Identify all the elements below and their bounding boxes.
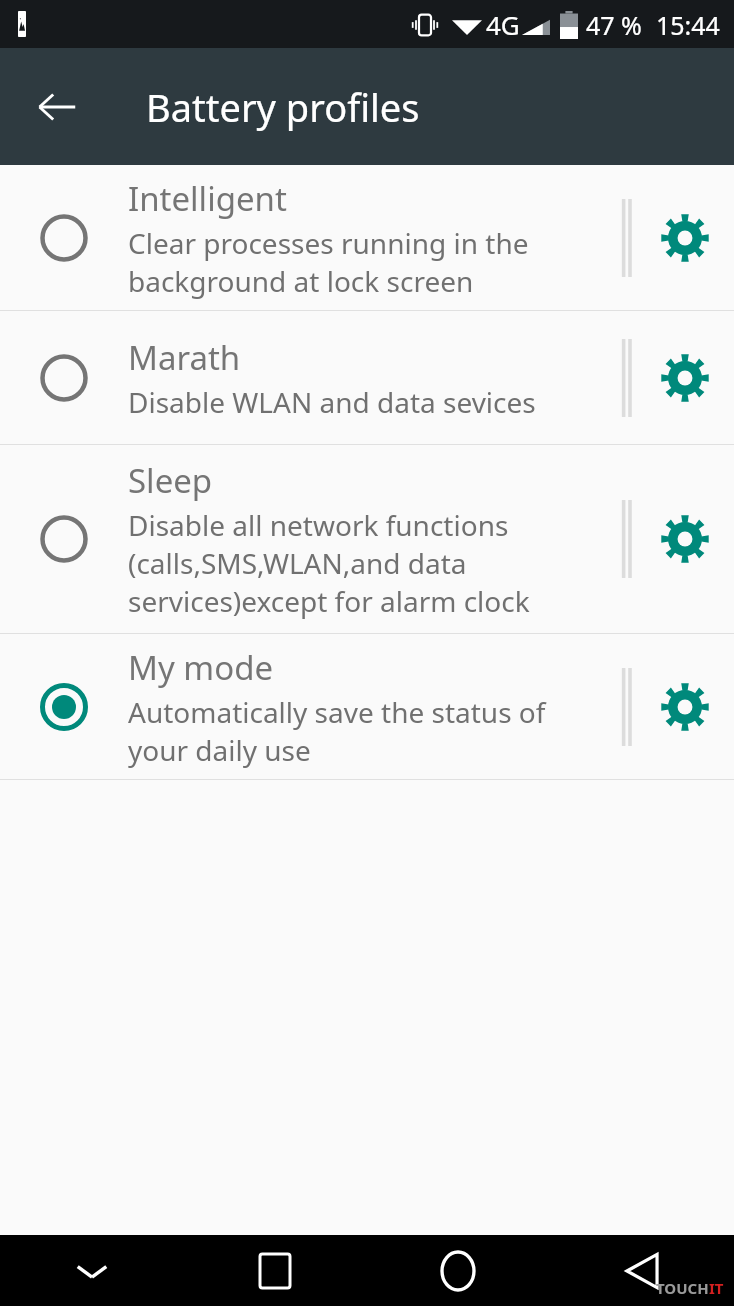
- staticText: 4G: [486, 7, 520, 42]
- staticText: Automatically save the status of: [128, 693, 546, 731]
- staticText: services)except for alarm clock: [128, 582, 530, 620]
- staticText: Marath: [128, 335, 241, 380]
- button[interactable]: Not selected: [0, 311, 734, 444]
- button[interactable]: Not selected: [28, 342, 100, 414]
- button[interactable]: Not selected: [0, 445, 734, 633]
- staticText: Disable all network functions: [128, 506, 509, 544]
- staticText: (calls,SMS,WLAN,and data: [128, 544, 467, 582]
- button[interactable]: Settings for My mode: [649, 671, 721, 743]
- button[interactable]: Not selected: [28, 503, 100, 575]
- staticText: Clear processes running in the: [128, 224, 529, 262]
- staticText: Intelligent: [128, 176, 287, 221]
- button[interactable]: Back: [550, 1235, 734, 1306]
- staticText: 15:44: [656, 8, 720, 42]
- button[interactable]: Recent apps: [183, 1235, 366, 1306]
- button[interactable]: Not selected: [0, 165, 734, 310]
- button[interactable]: Settings for Intelligent: [649, 202, 721, 274]
- button[interactable]: Hide keyboard: [0, 1235, 183, 1306]
- button[interactable]: Settings for Marath: [649, 342, 721, 414]
- button[interactable]: Back: [22, 72, 92, 142]
- staticText: IT: [709, 1278, 724, 1298]
- staticText: 47 %: [586, 8, 642, 42]
- staticText: Battery profiles: [146, 81, 420, 133]
- button[interactable]: Selected: [28, 671, 100, 743]
- staticText: background at lock screen: [128, 262, 474, 300]
- staticText: TOUCH: [656, 1278, 709, 1298]
- staticText: your daily use: [128, 731, 311, 769]
- button[interactable]: Selected: [0, 634, 734, 779]
- button[interactable]: Not selected: [28, 202, 100, 274]
- button[interactable]: Settings for Sleep: [649, 503, 721, 575]
- staticText: My mode: [128, 645, 274, 690]
- staticText: Disable WLAN and data sevices: [128, 383, 536, 421]
- button[interactable]: Home: [366, 1235, 550, 1306]
- staticText: Sleep: [128, 458, 213, 503]
